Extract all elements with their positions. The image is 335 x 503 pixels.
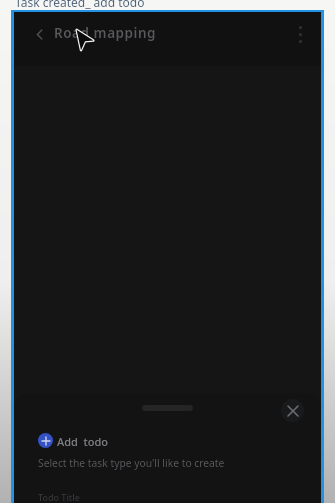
button[interactable]: Add todo (38, 433, 109, 448)
staticText: Add todo (57, 434, 109, 449)
button[interactable]: Close (281, 399, 304, 422)
staticText: Road mapping (54, 24, 157, 42)
button[interactable]: Back (23, 18, 55, 50)
staticText: Select the task type you'll like to crea… (38, 456, 225, 470)
staticText: Todo Title (38, 491, 80, 503)
staticText: Task created_ add todo (15, 0, 145, 10)
button[interactable]: More options (284, 18, 316, 50)
